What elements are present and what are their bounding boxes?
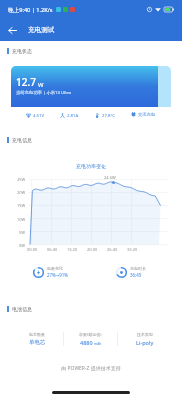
staticText: 25W [17,177,26,182]
staticText: 4.51V [33,112,45,118]
staticText: W [38,81,44,89]
staticText: 电芯数量 [29,332,45,337]
staticText: 26:40 [107,247,118,252]
staticText: 24.6W [104,175,116,180]
button[interactable]: 电芯数量 [11,322,171,355]
button[interactable]: 电量变化 [33,266,69,278]
staticText: 27.8°C [102,112,116,118]
button[interactable]: 充电时长 [116,266,146,278]
staticText: 2.81A [67,112,79,118]
staticText: 10W [17,217,26,222]
staticText: 27%→91% [47,272,69,278]
staticText: 4880 [80,339,93,346]
staticText: 5W [19,230,26,235]
staticText: 0W [19,243,26,248]
staticText: 电量变化 [47,266,63,271]
staticText: 00:00 [27,247,38,252]
staticText: 充电状态 [12,48,32,54]
button[interactable]: 12.7 [11,66,171,122]
staticText: 06:40 [47,247,58,252]
button[interactable]: 2.81A [60,112,79,118]
staticText: 当前充电功率 | 小米13 Ultra [16,89,71,95]
button[interactable]: 交流充电 [131,112,156,117]
staticText: 13:20 [67,247,78,252]
staticText: 技术类型 [137,332,153,337]
staticText: 充电测试 [28,26,55,34]
staticText: 交流充电 [138,112,156,117]
staticText: 12.7 [16,75,36,89]
staticText: 充电信息 [12,137,32,143]
staticText: 20W [17,190,26,195]
staticText: 晚上9:40 | 1.2K/s [8,6,53,14]
staticText: 充电功率变化 [11,163,171,169]
button[interactable]: 4.51V [26,112,45,118]
staticText: 充电时长 [130,266,146,271]
button[interactable]: 27.8°C [95,112,116,118]
staticText: Li-poly [136,339,154,346]
staticText: mAh [94,341,102,346]
staticText: 容量(额定值) [79,332,102,337]
staticText: 由 POWER-Z 提供技术支持 [0,365,182,372]
staticText: 20:00 [87,247,98,252]
staticText: 电池信息 [12,306,32,312]
staticText: 15W [17,203,26,208]
staticText: 单电芯 [29,339,46,346]
button[interactable]: Back [0,19,24,41]
staticText: 33:20 [127,247,138,252]
button[interactable]: 充电功率变化 [11,155,171,292]
staticText: 36:45 [130,272,142,278]
